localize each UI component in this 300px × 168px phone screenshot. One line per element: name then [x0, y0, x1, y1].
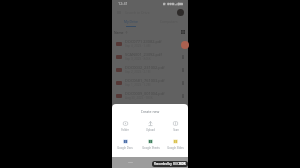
staticText: Recorded by	[154, 162, 173, 166]
staticText: Upload	[146, 128, 155, 132]
staticText: 12:41	[118, 1, 128, 6]
staticText: REC	[173, 162, 179, 166]
staticText: Folder	[121, 128, 129, 132]
button[interactable]: DOC0771 23082.pdf	[112, 37, 188, 50]
button[interactable]: Google Slides	[163, 139, 188, 150]
button[interactable]: More options	[179, 79, 186, 86]
staticText: Create new	[112, 109, 188, 114]
button[interactable]: More options	[179, 53, 186, 60]
staticText: DOC0681_761003.pdf	[125, 78, 165, 83]
staticText: DOC0009_001004.pdf	[125, 91, 165, 96]
staticText: Scan	[173, 128, 179, 132]
button[interactable]: More options	[179, 92, 186, 99]
button[interactable]: My Drive	[112, 17, 150, 26]
staticText: Name	[114, 30, 124, 34]
staticText: DOC0771 23082.pdf	[125, 39, 162, 44]
staticText: SCAN001_23092.pdf	[125, 52, 162, 57]
button[interactable]: Upload	[138, 121, 163, 132]
button[interactable]: Name	[114, 30, 128, 34]
button[interactable]: SCAN001_23092.pdf	[112, 50, 188, 63]
button[interactable]: More options	[179, 66, 186, 73]
button[interactable]: Switch to grid view	[179, 28, 186, 35]
button[interactable]: DOC0009_001004.pdf	[112, 89, 188, 102]
button[interactable]: More options	[179, 40, 186, 47]
button[interactable]: DOC0681_761003.pdf	[112, 76, 188, 89]
button[interactable]: Google Sheets	[138, 139, 163, 150]
staticText: RDR	[179, 162, 186, 166]
button[interactable]: Scan	[163, 121, 188, 132]
staticText: Google Docs	[117, 146, 133, 150]
staticText: My Drive	[124, 19, 138, 23]
button[interactable]: Account and settings	[177, 9, 184, 16]
button[interactable]: Folder	[112, 121, 138, 132]
button[interactable]: DOC0032_231002.pdf	[112, 63, 188, 76]
staticText: Google Slides	[167, 146, 184, 150]
button[interactable]: Google Docs	[112, 139, 138, 150]
staticText: Google Sheets	[142, 146, 160, 150]
staticText: DOC0032_231002.pdf	[125, 65, 165, 70]
